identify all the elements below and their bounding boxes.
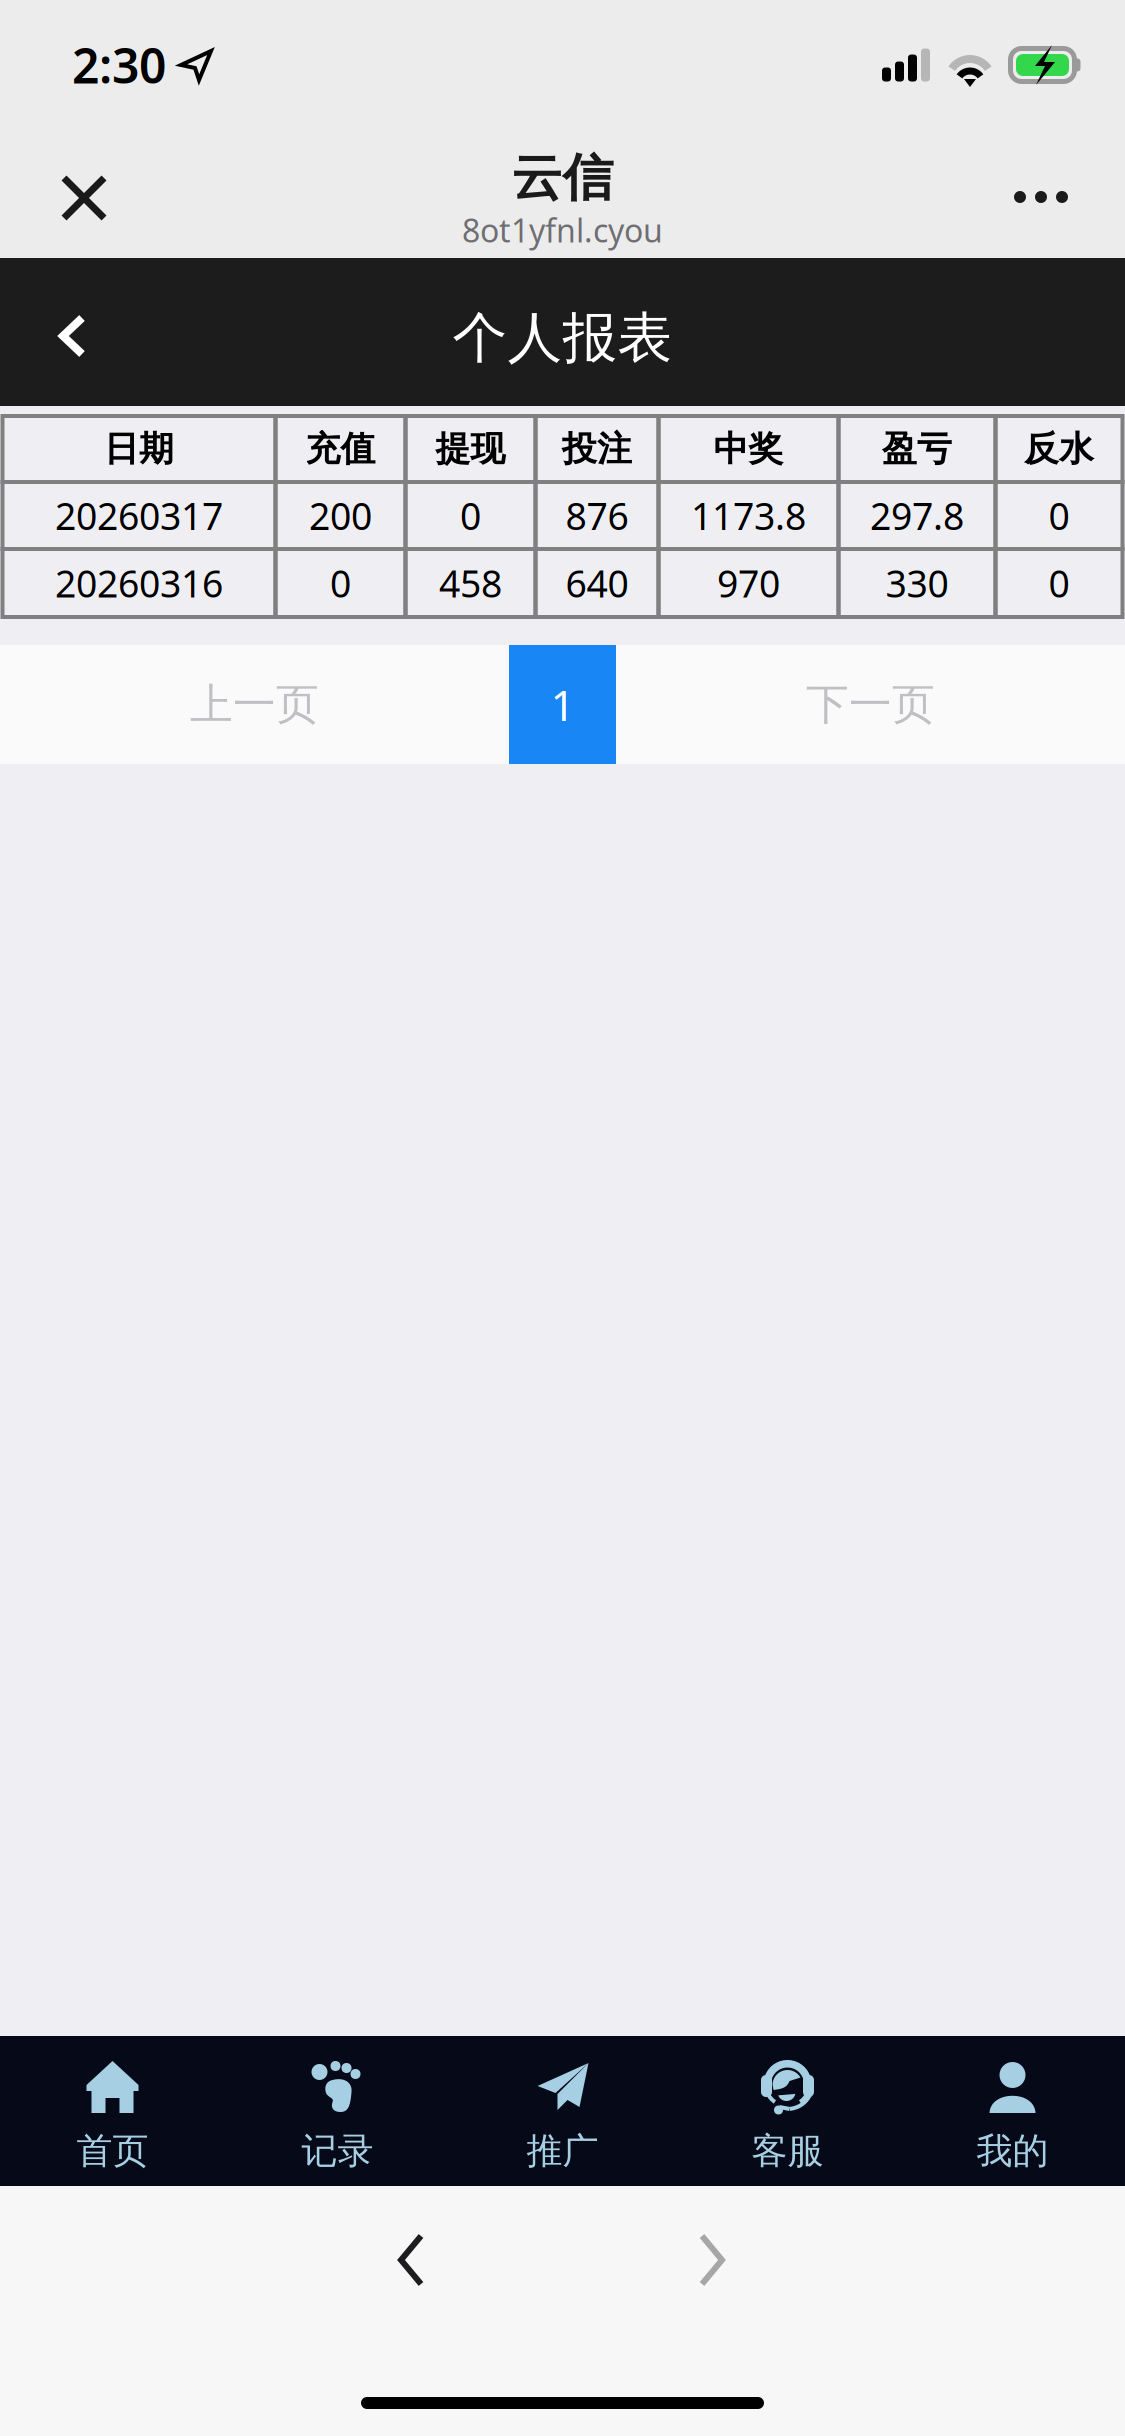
button[interactable]: Back xyxy=(371,2204,451,2316)
staticText: 中奖 xyxy=(713,428,783,470)
staticText: 876 xyxy=(565,491,628,540)
staticText: 1 xyxy=(550,676,574,733)
staticText: 200 xyxy=(309,491,372,540)
staticText: 20260316 xyxy=(55,558,223,608)
staticText: 458 xyxy=(439,558,502,608)
staticText: 0 xyxy=(460,491,481,540)
staticText: 1173.8 xyxy=(691,491,806,540)
staticText: 个人报表 xyxy=(452,304,672,371)
button[interactable]: Forward xyxy=(672,2204,752,2316)
staticText: 330 xyxy=(885,558,948,608)
staticText: 0 xyxy=(330,558,351,608)
staticText: 记录 xyxy=(301,2129,373,2173)
staticText: 下一页 xyxy=(806,678,935,731)
staticText: 客服 xyxy=(751,2129,823,2173)
staticText: 充值 xyxy=(305,428,375,470)
button[interactable]: 记录 xyxy=(225,2036,450,2186)
staticText: 20260317 xyxy=(55,491,223,540)
button[interactable]: Close xyxy=(32,138,136,250)
staticText: 上一页 xyxy=(190,678,319,731)
staticText: 我的 xyxy=(976,2129,1048,2173)
button[interactable]: 1 xyxy=(509,645,616,764)
staticText: 970 xyxy=(717,558,780,608)
staticText: 297.8 xyxy=(870,491,964,540)
button[interactable]: 上一页 xyxy=(0,645,509,764)
staticText: 投注 xyxy=(562,428,632,470)
staticText: 提现 xyxy=(435,428,505,470)
button[interactable]: 首页 xyxy=(0,2036,225,2186)
button[interactable]: 下一页 xyxy=(616,645,1125,764)
button[interactable]: More xyxy=(979,142,1093,246)
staticText: 推广 xyxy=(526,2129,598,2173)
staticText: 640 xyxy=(565,558,628,608)
button[interactable]: 我的 xyxy=(900,2036,1125,2186)
staticText: 0 xyxy=(1048,558,1069,608)
button[interactable]: Back xyxy=(0,284,126,380)
staticText: 0 xyxy=(1048,491,1069,540)
staticText: 反水 xyxy=(1024,428,1094,470)
button[interactable]: 客服 xyxy=(675,2036,900,2186)
staticText: 2:30 xyxy=(72,33,166,97)
staticText: 8ot1yfnl.cyou xyxy=(462,209,663,251)
staticText: 云信 xyxy=(511,147,613,209)
staticText: 首页 xyxy=(76,2129,148,2173)
button[interactable]: 推广 xyxy=(450,2036,675,2186)
staticText: 日期 xyxy=(104,428,174,470)
staticText: 盈亏 xyxy=(882,428,952,470)
